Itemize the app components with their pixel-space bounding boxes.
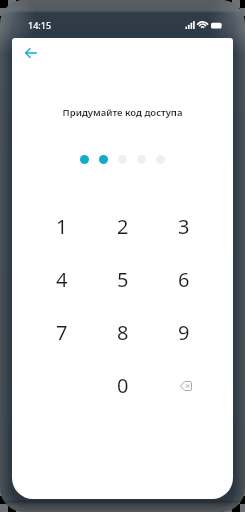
button[interactable]: Backspace — [153, 359, 214, 412]
button[interactable]: 8 — [92, 306, 153, 359]
other: Backspace — [180, 381, 192, 391]
button[interactable]: Back — [15, 38, 47, 69]
button[interactable]: 5 — [92, 253, 153, 306]
staticText: Придумайте код доступа — [12, 106, 233, 119]
button[interactable]: 1 — [31, 200, 92, 253]
button[interactable]: 6 — [153, 253, 214, 306]
staticText: 7 — [56, 319, 68, 346]
button[interactable]: 0 — [92, 359, 153, 412]
button[interactable]: 3 — [153, 200, 214, 253]
button[interactable]: 9 — [153, 306, 214, 359]
button[interactable]: 4 — [31, 253, 92, 306]
staticText: 2 — [117, 213, 129, 240]
staticText: 9 — [178, 319, 190, 346]
staticText: 0 — [117, 372, 129, 399]
staticText: 14:15 — [28, 19, 52, 31]
staticText: 4 — [56, 266, 68, 293]
staticText: 8 — [117, 319, 129, 346]
staticText: 3 — [178, 213, 190, 240]
staticText: 6 — [178, 266, 190, 293]
staticText: 5 — [117, 266, 129, 293]
button[interactable]: 7 — [31, 306, 92, 359]
staticText: 1 — [56, 213, 68, 240]
button[interactable]: 2 — [92, 200, 153, 253]
